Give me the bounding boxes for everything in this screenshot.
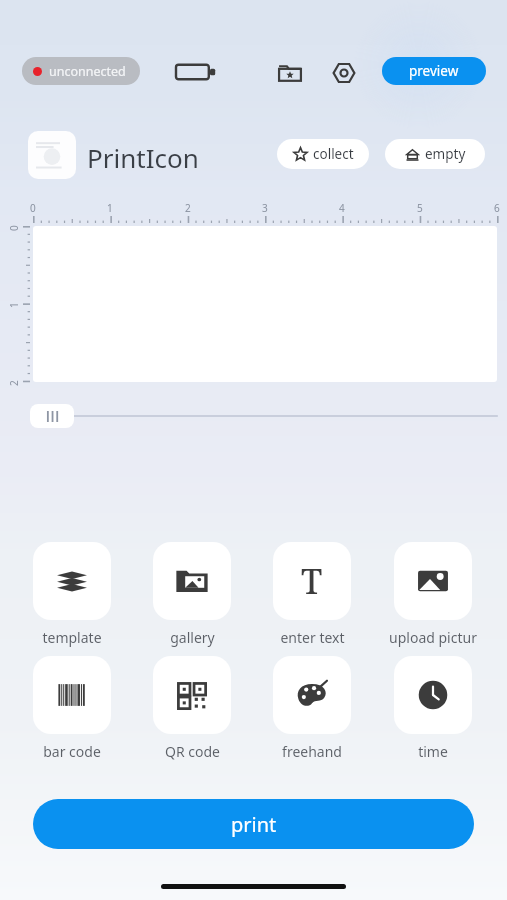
staticText: 5 [417,201,423,215]
staticText: print [231,811,277,838]
staticText: PrintIcon [87,140,199,175]
staticText: 1 [7,302,21,308]
staticText: T [301,558,323,604]
button[interactable]: collect [277,139,369,169]
staticText: collect [313,145,354,163]
staticText: time [418,742,448,761]
staticText: preview [409,62,459,80]
staticText: 3 [262,201,268,215]
staticText: 1 [107,201,113,215]
button[interactable]: Saved files [277,60,303,86]
staticText: QR code [165,742,220,761]
staticText: 0 [30,201,36,215]
staticText: 2 [185,201,191,215]
staticText: bar code [43,742,101,761]
staticText: 4 [339,201,345,215]
staticText: unconnected [49,63,126,80]
staticText: upload pictur [389,628,477,647]
staticText: gallery [170,628,215,647]
staticText: template [42,628,102,647]
button[interactable]: preview [382,57,486,85]
button[interactable] [394,656,472,734]
button[interactable]: T [273,542,351,620]
button[interactable] [33,656,111,734]
button[interactable] [153,542,231,620]
button[interactable]: Resize handle [30,404,74,428]
staticText: freehand sketching [249,742,375,761]
button[interactable]: empty [385,139,485,169]
button[interactable] [33,542,111,620]
button[interactable]: unconnected [22,57,140,85]
staticText: 6 [494,201,500,215]
button[interactable]: Battery [176,61,216,83]
button[interactable] [273,656,351,734]
button[interactable] [394,542,472,620]
staticText: enter text [280,628,345,647]
button[interactable]: Settings [331,60,357,86]
staticText: empty [425,145,466,163]
staticText: 0 [7,225,21,231]
staticText: 2 [7,380,21,386]
button[interactable]: print [33,799,474,849]
button[interactable]: Label preview [28,131,76,179]
button[interactable] [153,656,231,734]
